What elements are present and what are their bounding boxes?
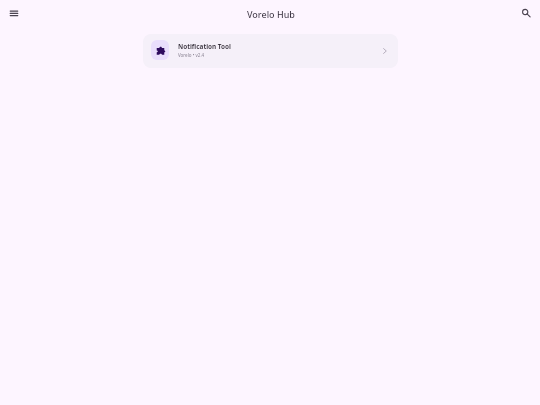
staticText: Notification Tool <box>178 42 232 51</box>
button[interactable]: Menu <box>5 5 23 23</box>
staticText: Vorelo Hub <box>247 8 295 20</box>
button[interactable]: Search <box>517 4 536 23</box>
button[interactable]: Notification Tool <box>143 34 398 68</box>
staticText: Vorelo • v2.4 <box>178 52 205 58</box>
